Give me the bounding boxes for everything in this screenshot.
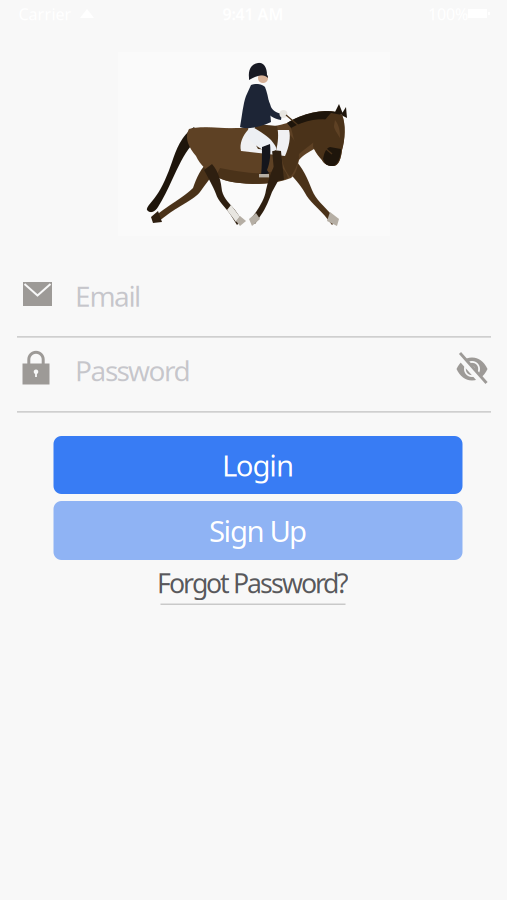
staticText: Forgot Password? <box>157 565 349 601</box>
staticText: Email <box>75 277 141 315</box>
button[interactable]: Sign Up <box>53 501 462 560</box>
button[interactable]: Forgot Password? <box>157 565 349 605</box>
button[interactable]: Email <box>17 273 491 337</box>
staticText: Password <box>75 352 190 389</box>
staticText: Sign Up <box>209 511 307 550</box>
button[interactable]: Password <box>17 347 491 413</box>
staticText: Login <box>222 445 294 484</box>
button[interactable]: Show password <box>450 349 494 389</box>
button[interactable]: Login <box>53 436 462 494</box>
